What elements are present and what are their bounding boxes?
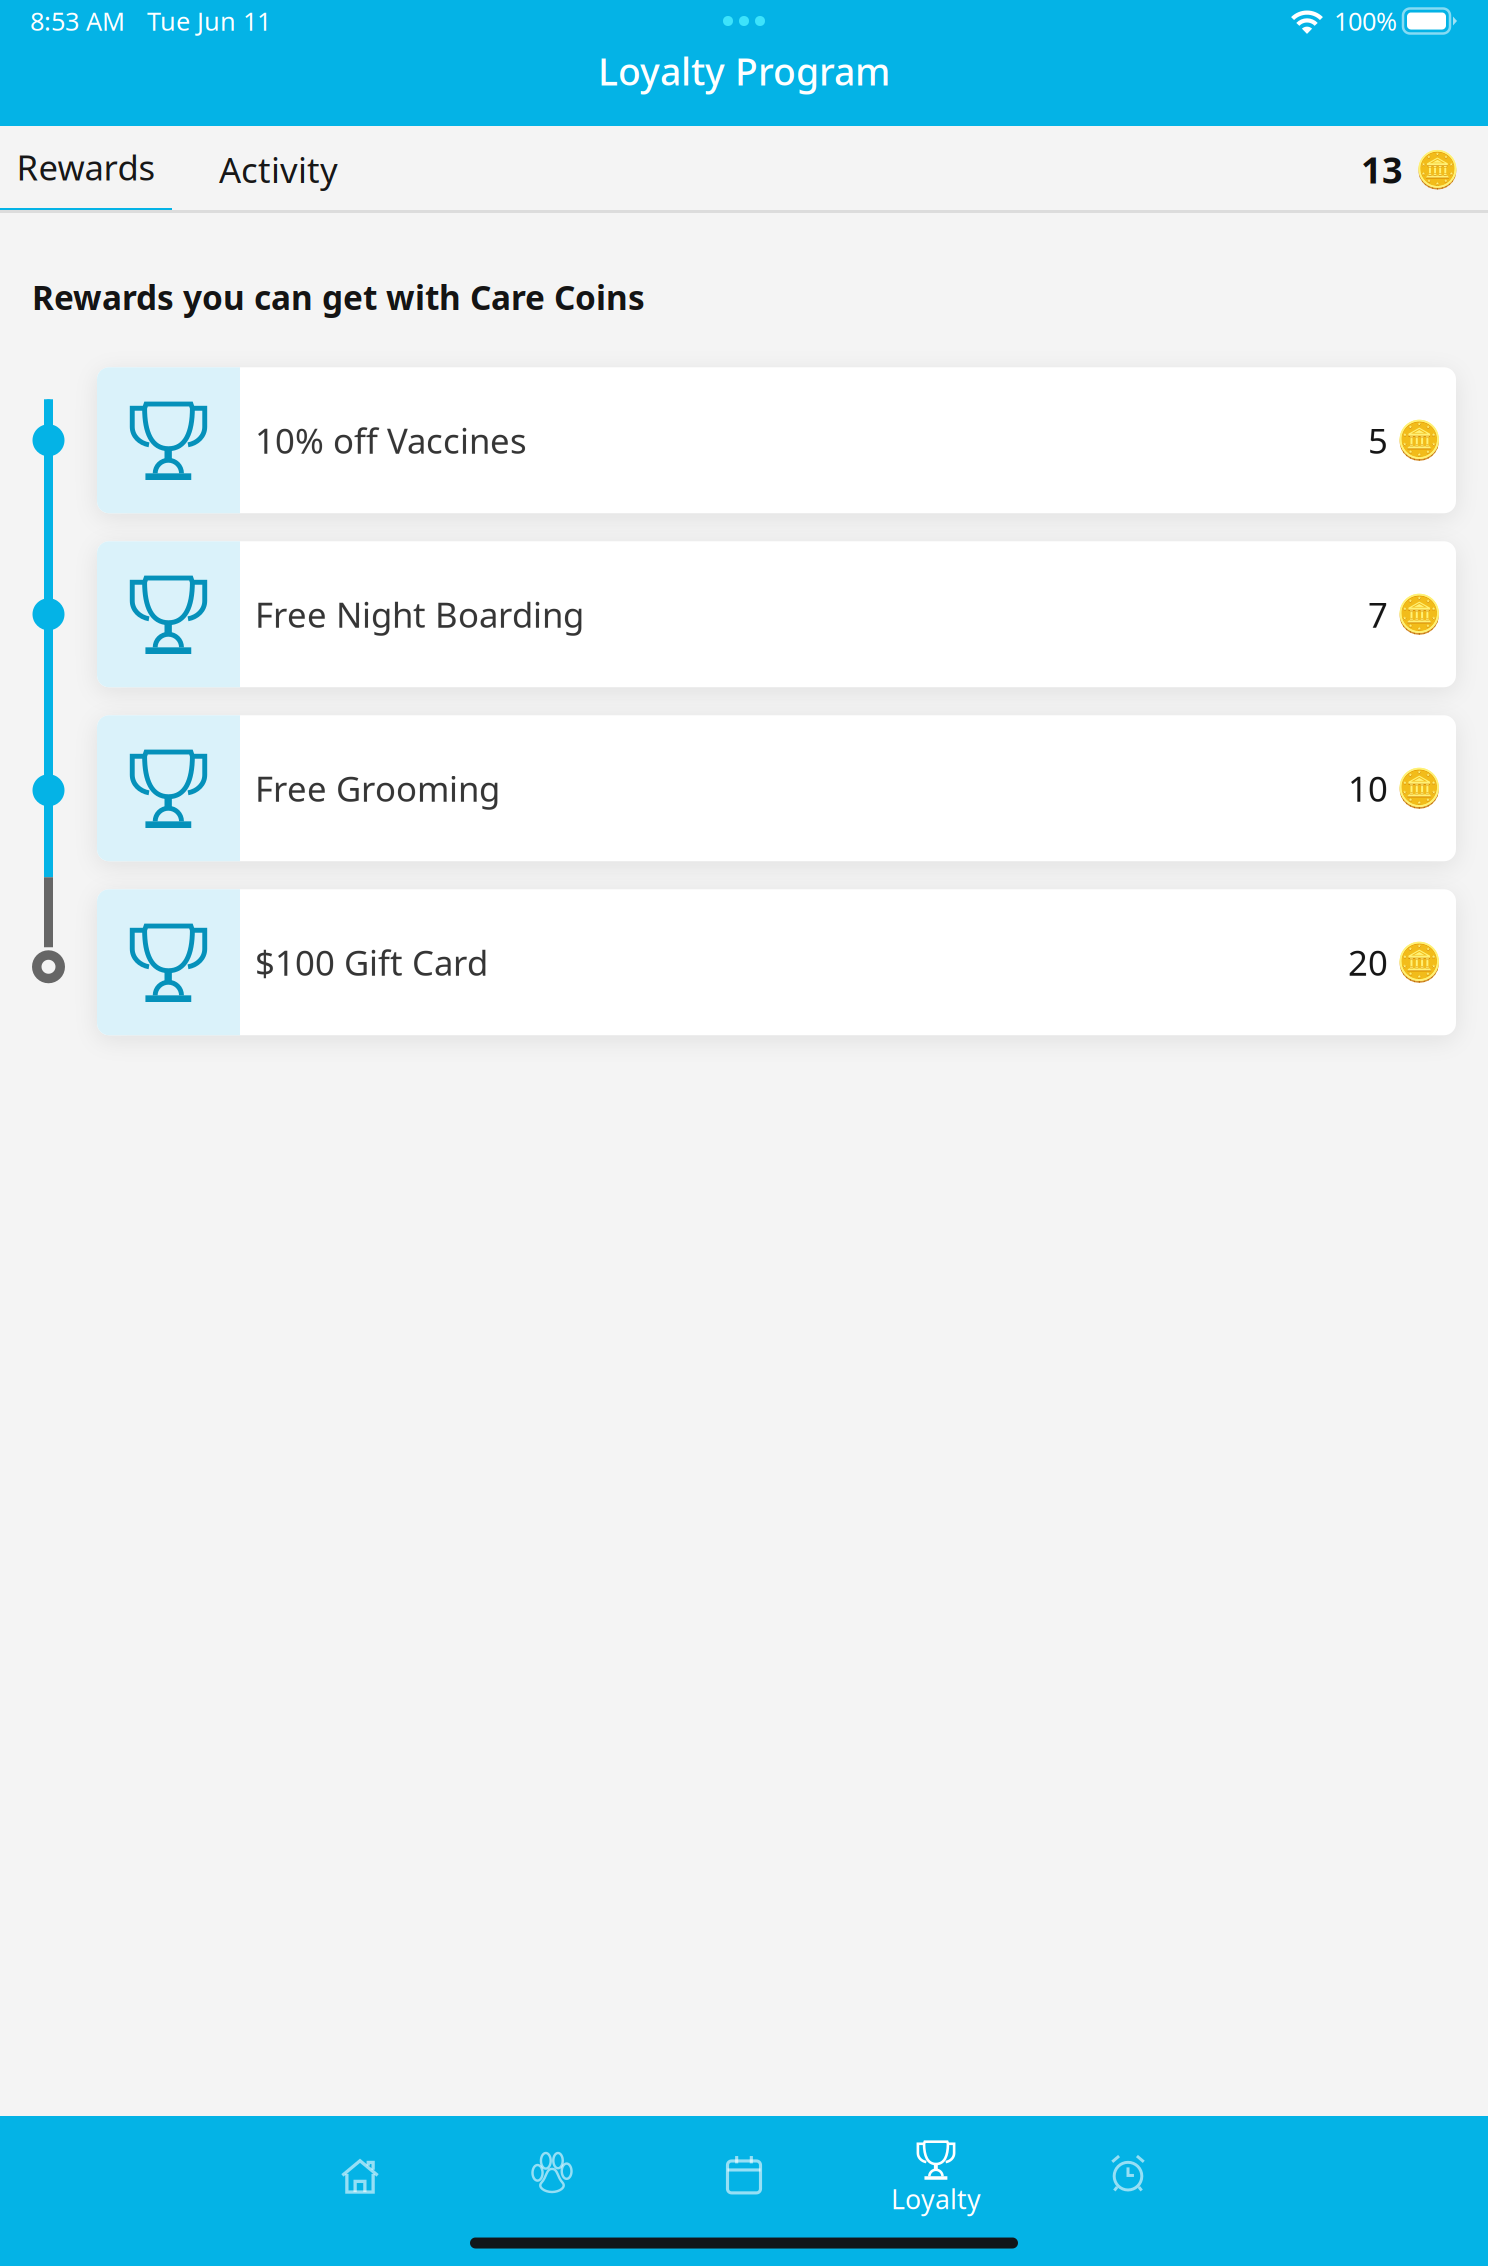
button[interactable]: 10% off Vaccines (97, 367, 1456, 513)
staticText: Loyalty Program (598, 46, 890, 96)
button[interactable]: Pets (456, 2118, 648, 2218)
button[interactable]: Rewards (0, 126, 172, 213)
staticText: 🪙 (1396, 941, 1442, 984)
staticText: 🪙 (1396, 419, 1442, 462)
staticText: 13 (1361, 146, 1403, 193)
button[interactable]: Reminders (1032, 2118, 1224, 2218)
staticText: Tue Jun 11 (147, 4, 271, 38)
staticText: Free Grooming (255, 765, 500, 811)
staticText: 🪙 (1396, 767, 1442, 810)
button[interactable]: Home (264, 2118, 456, 2218)
button[interactable]: Activity (172, 126, 343, 213)
staticText: Rewards (16, 144, 155, 190)
staticText: 10 (1348, 765, 1388, 811)
staticText: 7 (1368, 591, 1388, 637)
staticText: 🪙 (1415, 149, 1460, 190)
button[interactable]: Appointments (648, 2118, 840, 2218)
staticText: 8:53 AM (30, 4, 125, 38)
staticText: 100% (1334, 4, 1397, 38)
staticText: 20 (1348, 939, 1388, 985)
button[interactable]: Free Grooming (97, 715, 1456, 861)
button[interactable]: $100 Gift Card (97, 889, 1456, 1035)
staticText: 5 (1368, 417, 1388, 463)
button[interactable]: Loyalty (840, 2118, 1032, 2218)
button[interactable]: Free Night Boarding (97, 541, 1456, 687)
staticText: 10% off Vaccines (255, 417, 527, 463)
staticText: Rewards you can get with Care Coins (32, 275, 645, 319)
staticText: Loyalty (891, 2181, 981, 2217)
staticText: Free Night Boarding (255, 591, 584, 637)
staticText: Activity (219, 146, 338, 192)
staticText: $100 Gift Card (255, 939, 488, 985)
staticText: 🪙 (1396, 593, 1442, 636)
